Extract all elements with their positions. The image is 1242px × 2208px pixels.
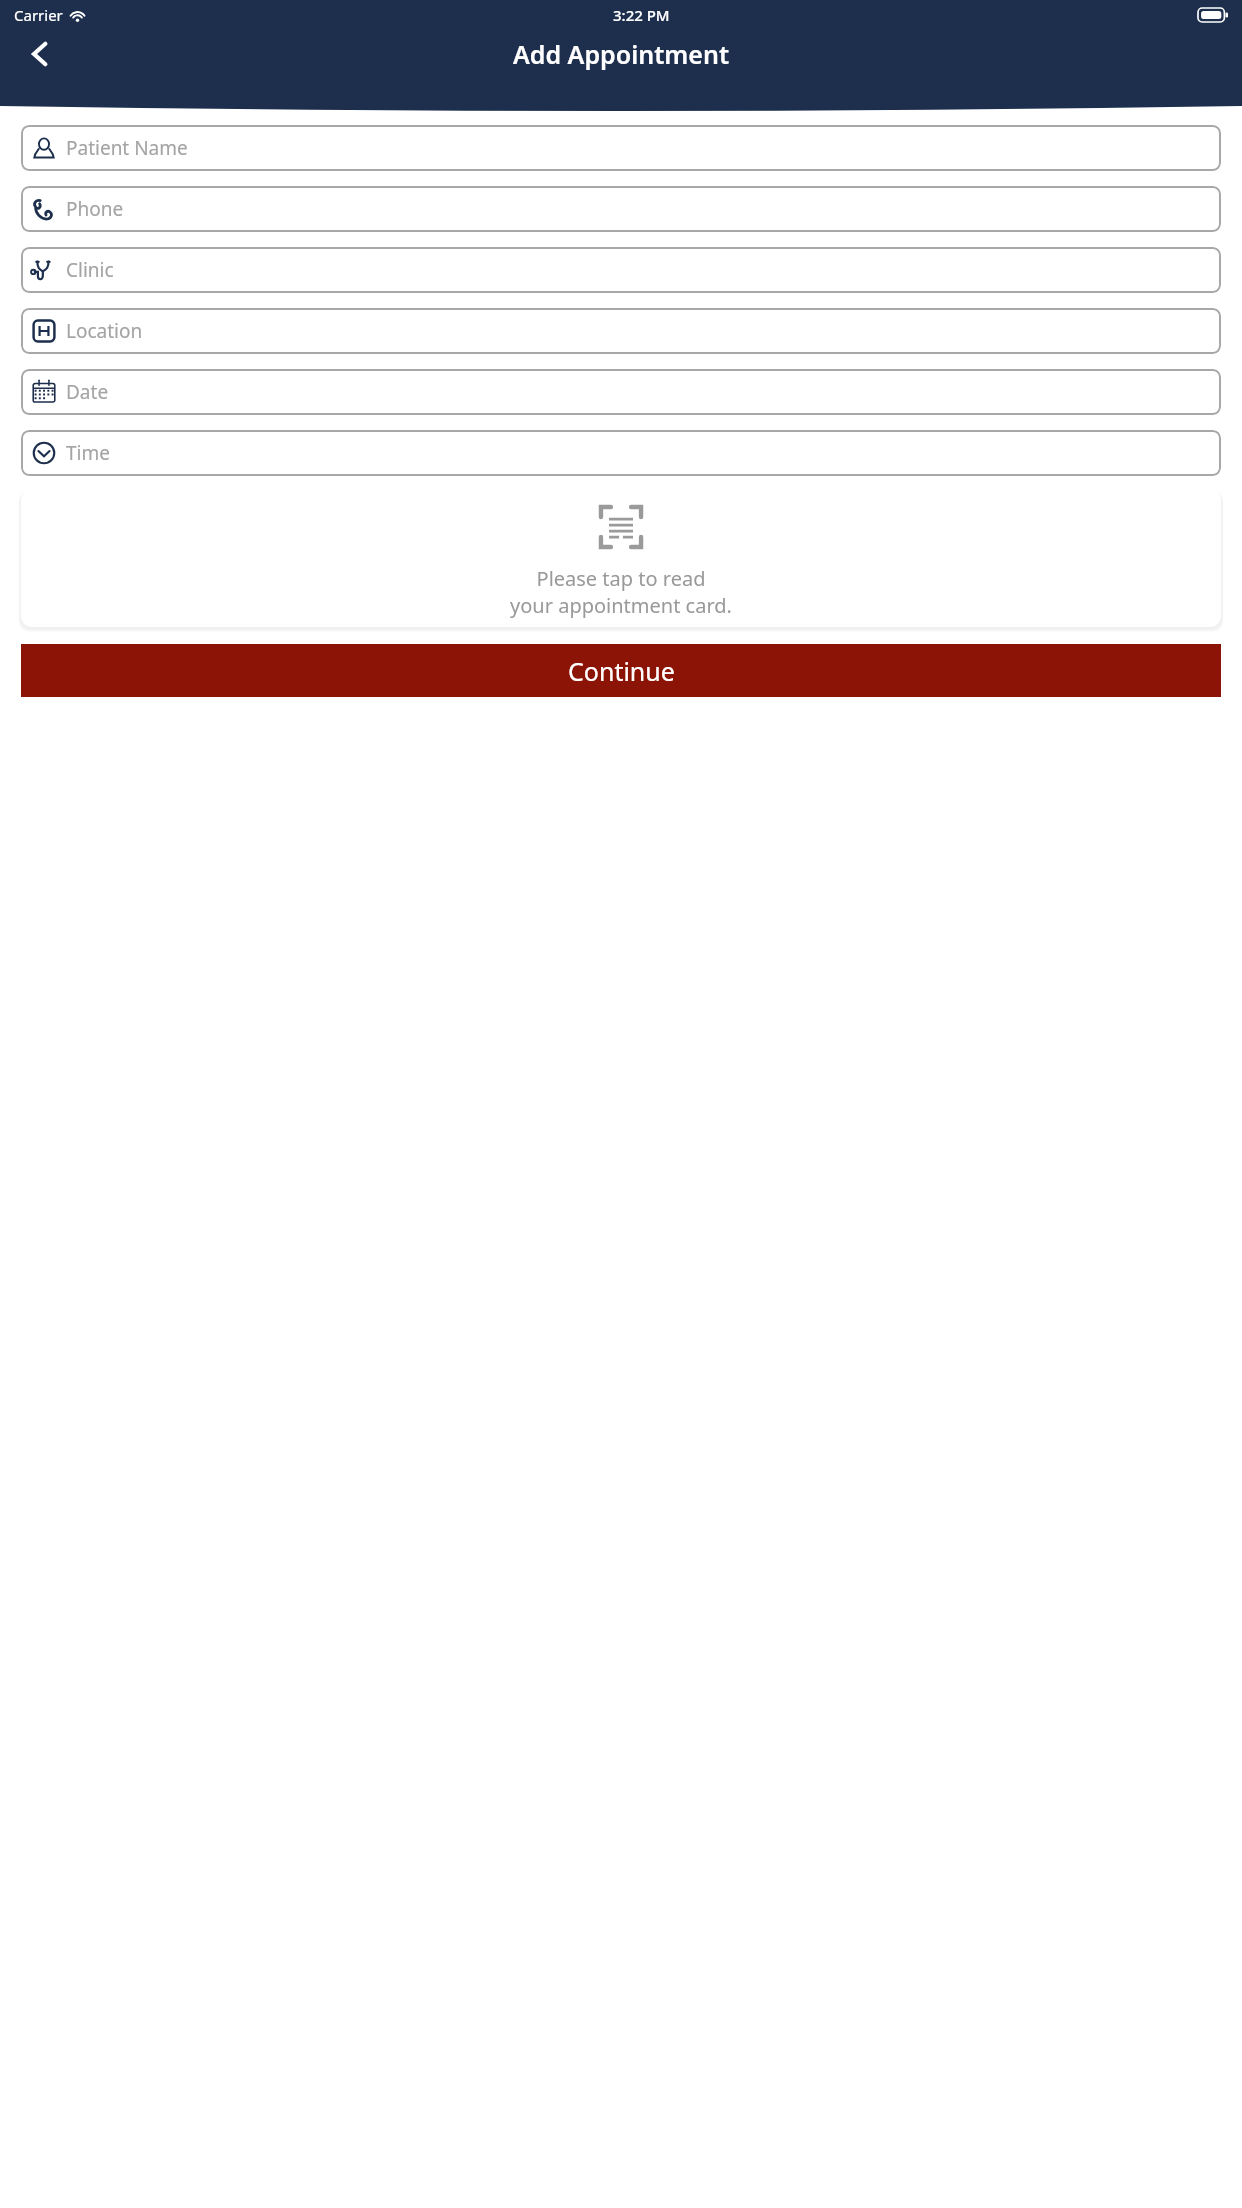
- staticText: Time: [66, 440, 110, 466]
- staticText: 3:22 PM: [613, 5, 670, 25]
- staticText: Date: [66, 379, 109, 405]
- button[interactable]: Back: [16, 30, 64, 78]
- button[interactable]: Location: [21, 308, 1221, 354]
- staticText: Patient Name: [66, 135, 188, 161]
- staticText: Clinic: [66, 257, 114, 283]
- staticText: Location: [66, 318, 143, 344]
- staticText: Add Appointment: [513, 37, 730, 71]
- button[interactable]: Time: [21, 430, 1221, 476]
- button[interactable]: Phone: [21, 186, 1221, 232]
- staticText: Continue: [568, 654, 675, 688]
- button[interactable]: Please tap to read your appointment card…: [21, 489, 1221, 627]
- staticText: Phone: [66, 196, 124, 222]
- staticText: Please tap to read your appointment card…: [510, 565, 732, 619]
- button[interactable]: Continue: [21, 644, 1221, 697]
- button[interactable]: Date: [21, 369, 1221, 415]
- staticText: Carrier: [14, 5, 63, 25]
- button[interactable]: Patient Name: [21, 125, 1221, 171]
- button[interactable]: Clinic: [21, 247, 1221, 293]
